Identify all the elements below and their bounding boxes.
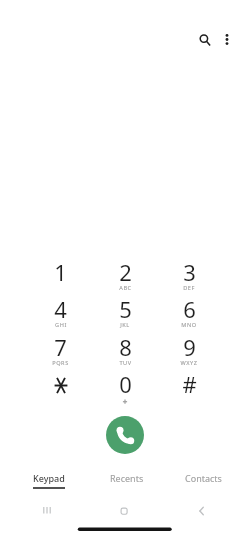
staticText: MNO [181, 321, 197, 329]
button[interactable]: 3 [157, 258, 221, 296]
staticText: TUV [119, 359, 132, 367]
button[interactable]: Call [106, 416, 144, 454]
button[interactable] [28, 370, 93, 408]
button[interactable]: Home [109, 500, 141, 522]
staticText: GHI [55, 321, 67, 329]
staticText: 2 [119, 257, 132, 287]
button[interactable]: # [157, 370, 221, 408]
staticText: Keypad [33, 472, 65, 484]
button[interactable]: Recent apps [32, 500, 64, 522]
button[interactable]: Search [190, 26, 218, 54]
staticText: 7 [54, 332, 67, 362]
button[interactable]: 6 [157, 295, 221, 333]
staticText: 4 [54, 294, 67, 324]
staticText: Recents [110, 472, 144, 484]
button[interactable]: 1 [28, 258, 93, 296]
button[interactable]: 9 [157, 333, 221, 371]
staticText: 6 [183, 294, 196, 324]
staticText: PQRS [52, 359, 69, 367]
staticText: 1 [54, 257, 67, 287]
button[interactable]: 4 [28, 295, 93, 333]
staticText: DEF [183, 284, 195, 292]
staticText: 5 [119, 294, 132, 324]
staticText: 3 [183, 257, 196, 287]
button[interactable]: Keypad [10, 472, 88, 489]
staticText: Contacts [185, 472, 222, 484]
button[interactable]: More options [213, 26, 241, 54]
staticText: 9 [183, 332, 196, 362]
button[interactable]: 7 [28, 333, 93, 371]
button[interactable]: 0 [93, 370, 157, 408]
staticText: WXYZ [180, 359, 198, 367]
staticText: ABC [119, 284, 132, 292]
staticText: 0 [119, 369, 132, 399]
button[interactable]: 5 [93, 295, 157, 333]
button[interactable]: Contacts [165, 472, 242, 484]
button[interactable]: Back [186, 500, 218, 522]
button[interactable]: 2 [93, 258, 157, 296]
staticText: JKL [120, 321, 130, 329]
button[interactable]: Recents [88, 472, 165, 484]
button[interactable]: 8 [93, 333, 157, 371]
staticText: # [182, 369, 197, 399]
staticText: 8 [119, 332, 132, 362]
